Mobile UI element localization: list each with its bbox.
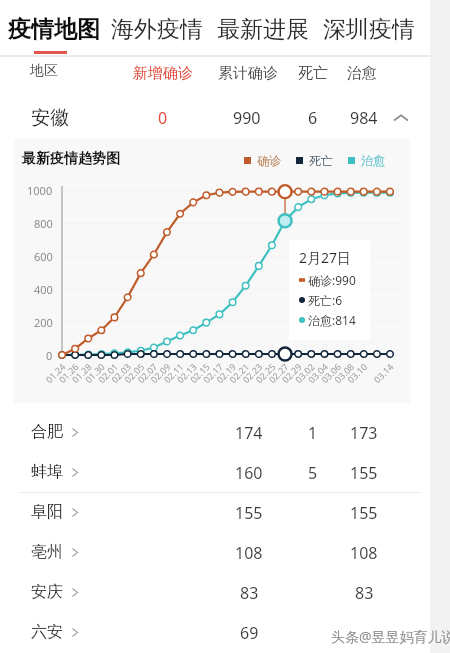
staticText: 155 (235, 502, 263, 524)
staticText: 深圳疫情 (323, 15, 415, 44)
staticText: 死亡:6 (308, 292, 343, 308)
staticText: 155 (350, 462, 378, 484)
staticText: 2月27日 (299, 248, 352, 267)
staticText: 108 (235, 542, 263, 564)
button[interactable] (0, 413, 430, 453)
staticText: 治愈 (347, 64, 377, 83)
staticText: 0 (158, 107, 168, 129)
staticText: 确诊:990 (308, 272, 356, 288)
button[interactable]: 海外疫情 (111, 15, 203, 44)
staticText: 死亡 (309, 153, 333, 168)
staticText: 6 (308, 107, 318, 129)
staticText: 最新进展 (217, 15, 309, 44)
staticText: 108 (350, 542, 378, 564)
staticText: 疫情地图 (8, 15, 100, 44)
staticText: 最新疫情趋势图 (22, 150, 120, 168)
button[interactable] (0, 98, 430, 138)
button[interactable]: 死亡 (296, 153, 333, 168)
staticText: 173 (350, 422, 378, 444)
staticText: 累计确诊 (218, 64, 278, 83)
button[interactable]: 疫情地图 (8, 15, 100, 54)
staticText: 地区 (30, 62, 58, 80)
staticText: 83 (355, 582, 374, 604)
staticText: 990 (233, 107, 261, 129)
button[interactable] (0, 533, 430, 573)
button[interactable] (0, 573, 430, 613)
button[interactable] (0, 613, 430, 653)
staticText: 六安 (31, 622, 63, 642)
staticText: 160 (235, 462, 263, 484)
staticText: 5 (308, 462, 318, 484)
staticText: 984 (350, 107, 378, 129)
button[interactable]: Collapse (388, 105, 414, 131)
staticText: 69 (240, 622, 259, 644)
staticText: 海外疫情 (111, 15, 203, 44)
staticText: 83 (240, 582, 259, 604)
button[interactable] (0, 453, 430, 493)
staticText: 1 (308, 422, 318, 444)
staticText: 安徽 (31, 106, 69, 130)
staticText: 155 (350, 502, 378, 524)
staticText: 治愈 (361, 153, 385, 168)
staticText: 确诊 (257, 153, 281, 168)
button[interactable]: 深圳疫情 (323, 15, 415, 44)
staticText: 亳州 (31, 542, 63, 562)
staticText: 阜阳 (31, 502, 63, 522)
staticText: 治愈:814 (308, 312, 356, 328)
staticText: 合肥 (31, 422, 63, 442)
staticText: 174 (235, 422, 263, 444)
staticText: 安庆 (31, 582, 63, 602)
button[interactable]: 最新进展 (217, 15, 309, 44)
button[interactable]: 确诊 (244, 153, 281, 168)
button[interactable] (0, 493, 430, 533)
staticText: 新增确诊 (133, 64, 193, 83)
button[interactable]: 治愈 (348, 153, 385, 168)
staticText: 头条@昱昱妈育儿说 (331, 627, 450, 646)
staticText: 蚌埠 (31, 462, 63, 482)
staticText: 死亡 (298, 64, 328, 83)
